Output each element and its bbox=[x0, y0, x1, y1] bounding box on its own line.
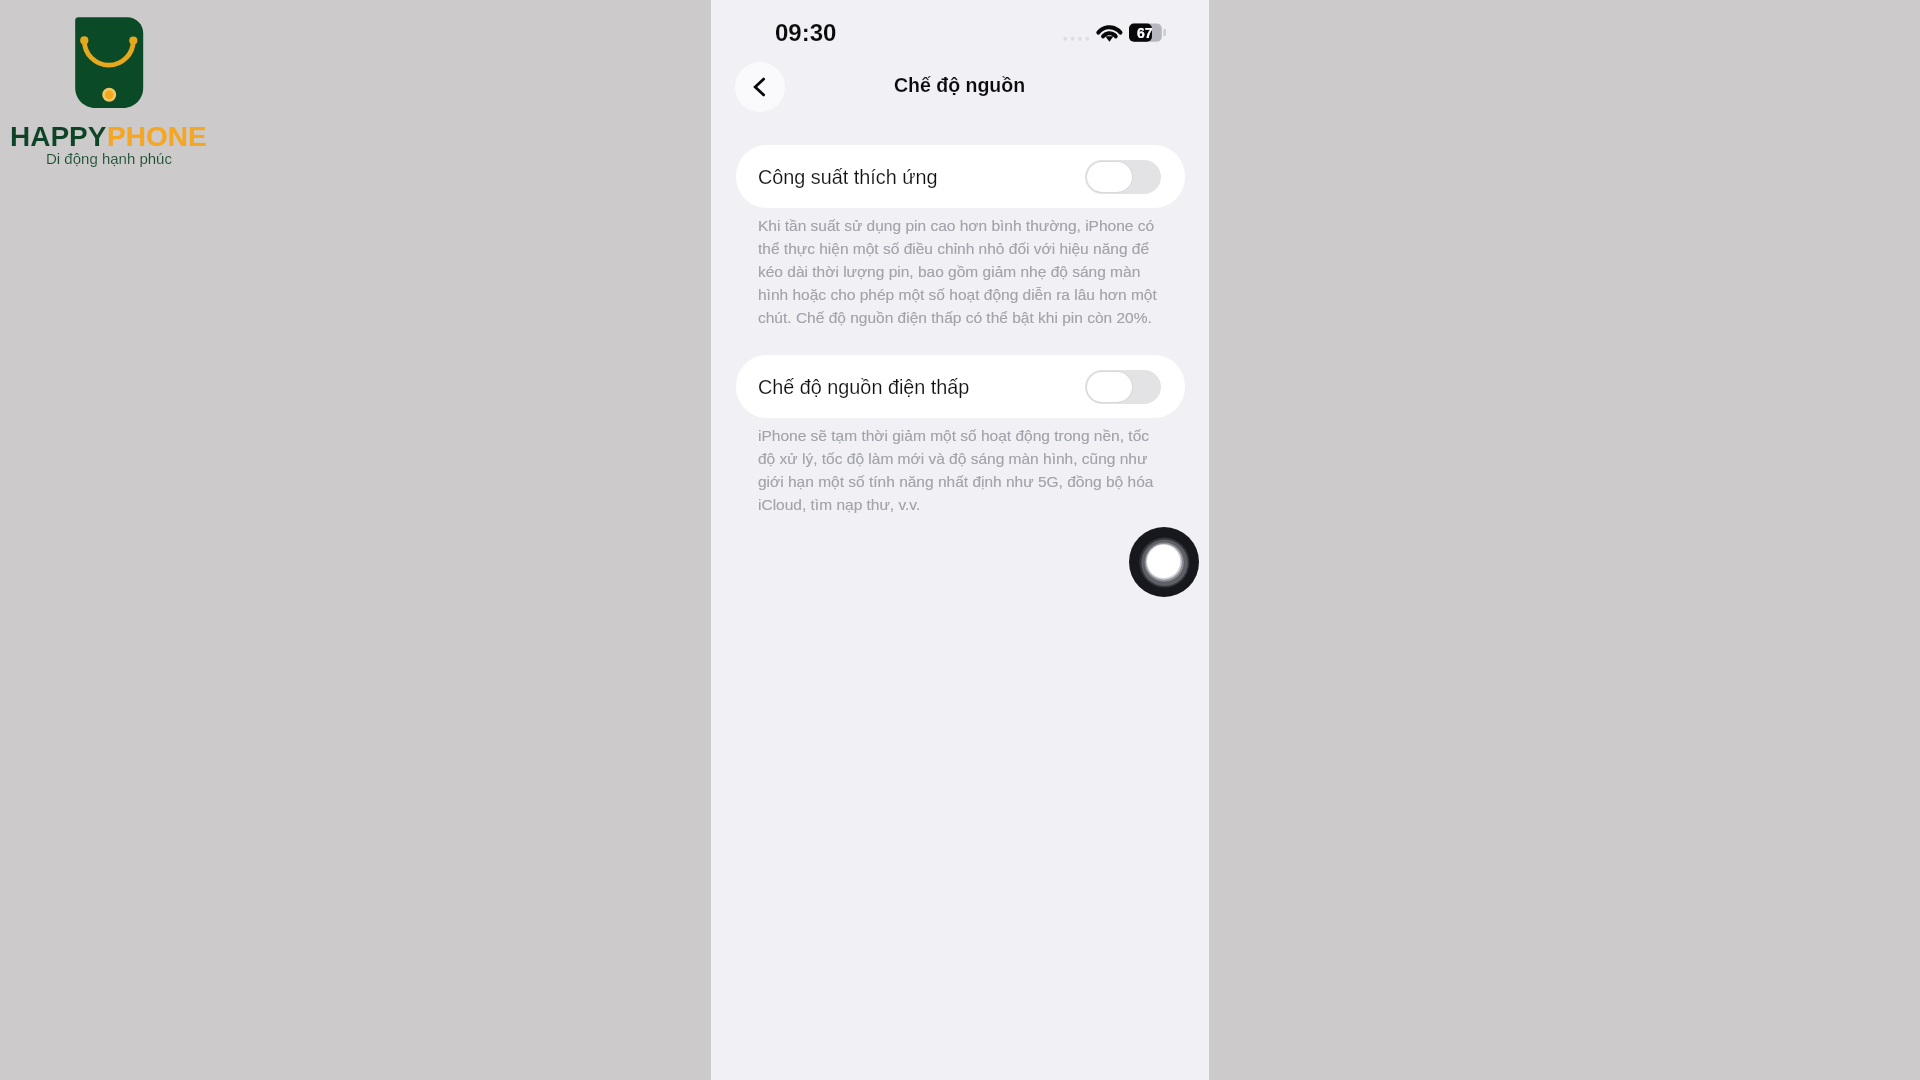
staticText: Chế độ nguồn điện thấp bbox=[758, 376, 970, 398]
staticText: 09:30 bbox=[775, 19, 837, 46]
staticText: PHONE bbox=[107, 121, 207, 152]
staticText: Công suất thích ứng bbox=[758, 166, 938, 188]
button[interactable]: Toggle bbox=[1085, 160, 1161, 194]
staticText: iPhone sẽ tạm thời giảm một số hoạt động… bbox=[758, 427, 1170, 514]
staticText: 67 bbox=[1137, 25, 1153, 41]
staticText: Chế độ nguồn bbox=[894, 74, 1026, 96]
button[interactable]: Công suất thích ứng bbox=[736, 145, 1185, 208]
staticText: Di động hạnh phúc bbox=[46, 150, 172, 167]
button[interactable]: Chế độ nguồn điện thấp bbox=[736, 355, 1185, 418]
button[interactable]: Toggle bbox=[1085, 370, 1161, 404]
staticText: HAPPY bbox=[10, 121, 107, 152]
staticText: Khi tần suất sử dụng pin cao hơn bình th… bbox=[758, 217, 1170, 327]
button[interactable]: Back bbox=[735, 62, 785, 112]
